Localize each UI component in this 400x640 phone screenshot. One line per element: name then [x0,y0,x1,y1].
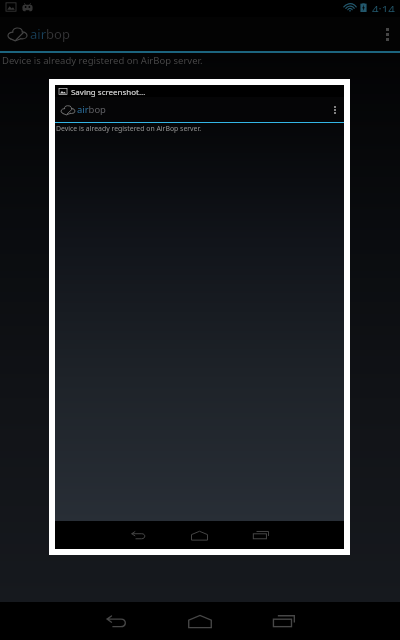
button[interactable]: Home [158,602,242,640]
button[interactable]: More options [374,17,400,51]
button[interactable]: Recent apps [242,602,326,640]
button[interactable]: Back [108,521,169,549]
staticText: airbop [30,25,70,43]
button[interactable]: Back [74,602,158,640]
staticText: 4:14 [372,2,395,12]
button[interactable]: Recent apps [230,521,291,549]
button[interactable]: Home [169,521,230,549]
staticText: Device is already registered on AirBop s… [2,54,203,67]
staticText: Device is already registered on AirBop s… [56,124,202,133]
staticText: airbop [77,103,106,116]
staticText: Saving screenshot… [71,86,146,97]
button[interactable]: More options [325,97,344,122]
